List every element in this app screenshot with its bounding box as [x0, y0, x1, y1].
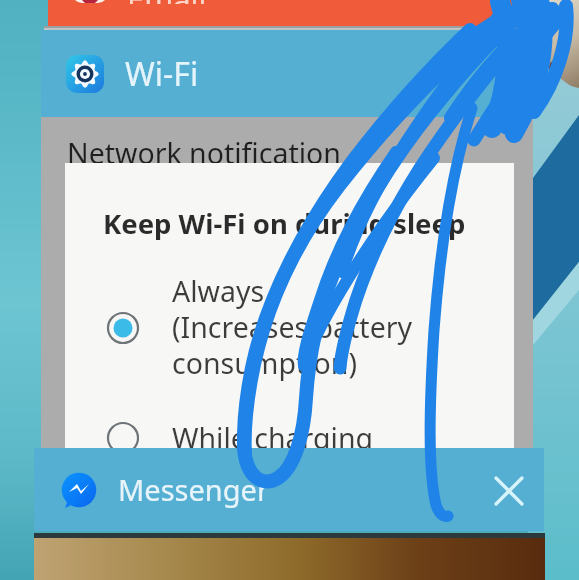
staticText: While charging: [172, 419, 374, 458]
button[interactable]: Wi-Fi: [41, 30, 533, 117]
staticText: Email: [127, 0, 207, 4]
staticText: Always (Increases battery consumption): [172, 272, 413, 383]
button[interactable]: Close Messenger: [485, 467, 533, 515]
button[interactable]: Always (Increases battery consumption): [65, 264, 514, 386]
staticText: Network notification: [67, 134, 341, 173]
staticText: Messenger: [118, 470, 269, 509]
button[interactable]: Email: [48, 0, 524, 26]
staticText: Wi-Fi: [125, 52, 199, 96]
staticText: Keep Wi-Fi on during sleep: [103, 205, 466, 242]
button[interactable]: Messenger: [34, 448, 544, 531]
button[interactable]: While charging: [65, 411, 514, 453]
